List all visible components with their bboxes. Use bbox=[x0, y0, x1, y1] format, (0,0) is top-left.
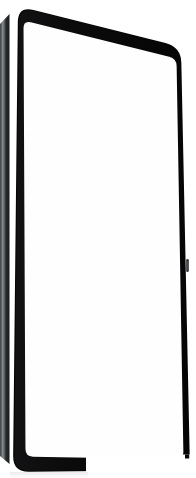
button[interactable]: Tablet product photo, three-quarter view bbox=[0, 0, 196, 478]
